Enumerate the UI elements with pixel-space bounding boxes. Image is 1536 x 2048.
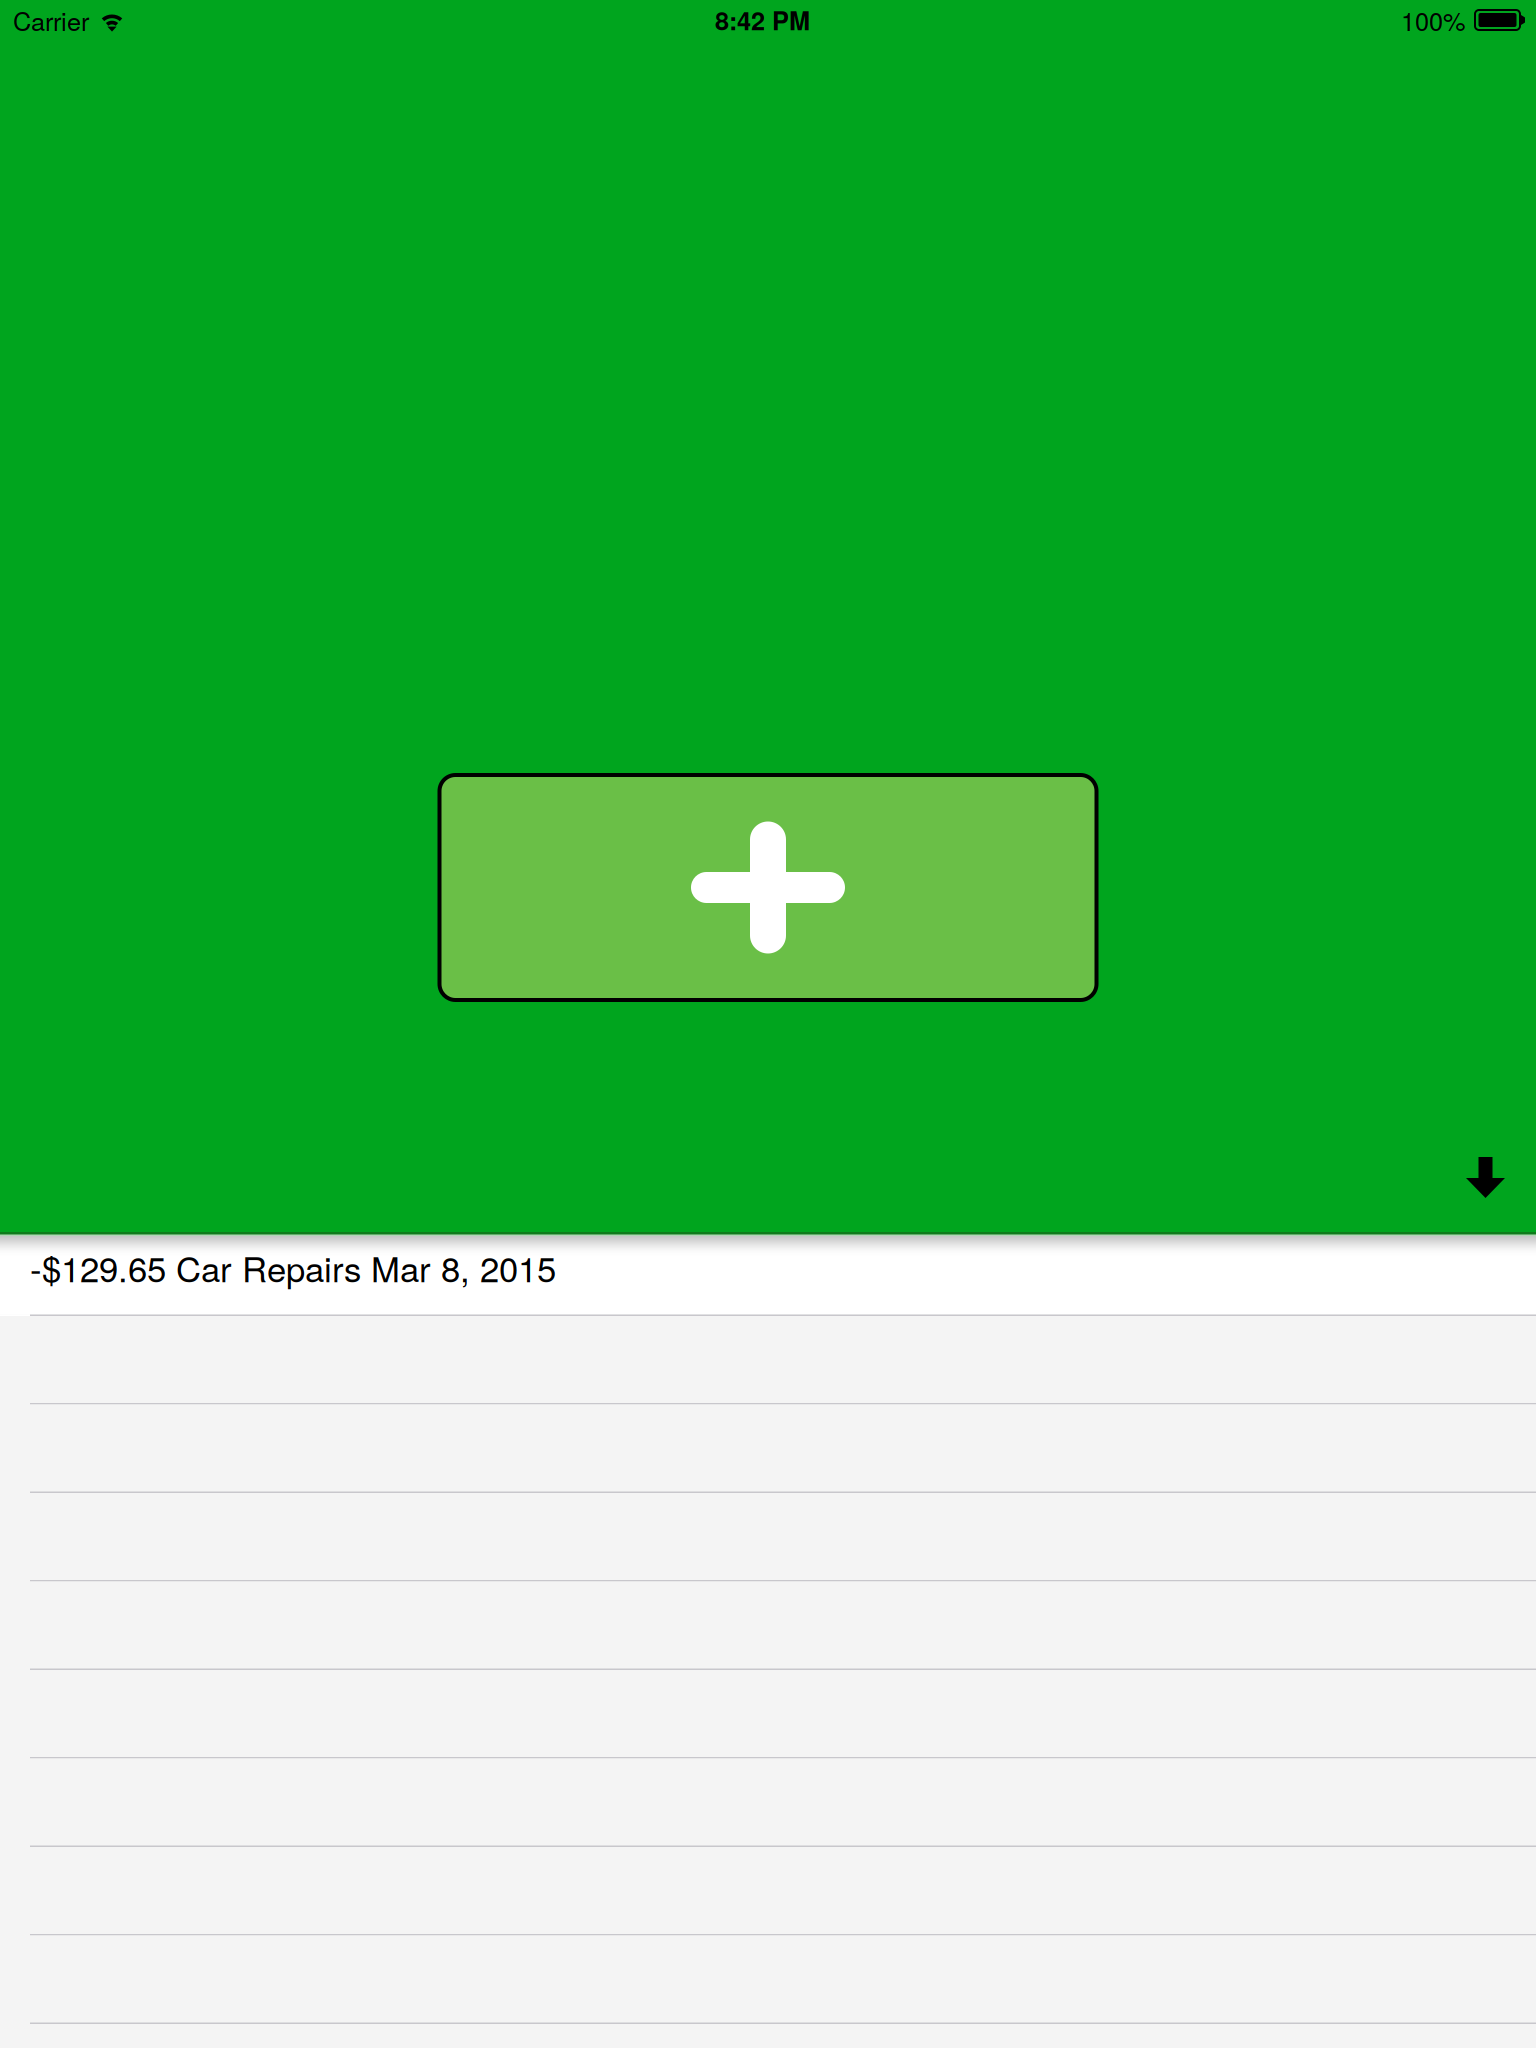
button[interactable]: Empty transaction row	[0, 1847, 1536, 1935]
button[interactable]: -$129.65 Car Repairs Mar 8, 2015	[0, 1232, 1536, 1316]
staticText: -$129.65 Car Repairs Mar 8, 2015	[30, 1242, 556, 1292]
staticText: 100%	[1401, 2, 1466, 38]
button[interactable]: Add transaction	[439, 775, 1096, 1000]
button[interactable]: Empty transaction row	[0, 1670, 1536, 1758]
button[interactable]: Empty transaction row	[0, 1581, 1536, 1670]
staticText: 8:42 PM	[715, 2, 810, 38]
button[interactable]: Empty transaction row	[0, 1404, 1536, 1493]
button[interactable]: Empty transaction row	[0, 1935, 1536, 2024]
button[interactable]: Empty transaction row	[0, 1316, 1536, 1404]
button[interactable]: Scroll to transactions	[1466, 1157, 1505, 1198]
button[interactable]: Empty transaction row	[0, 1758, 1536, 1847]
staticText: Carrier	[13, 2, 89, 38]
button[interactable]: Empty transaction row	[0, 1493, 1536, 1581]
